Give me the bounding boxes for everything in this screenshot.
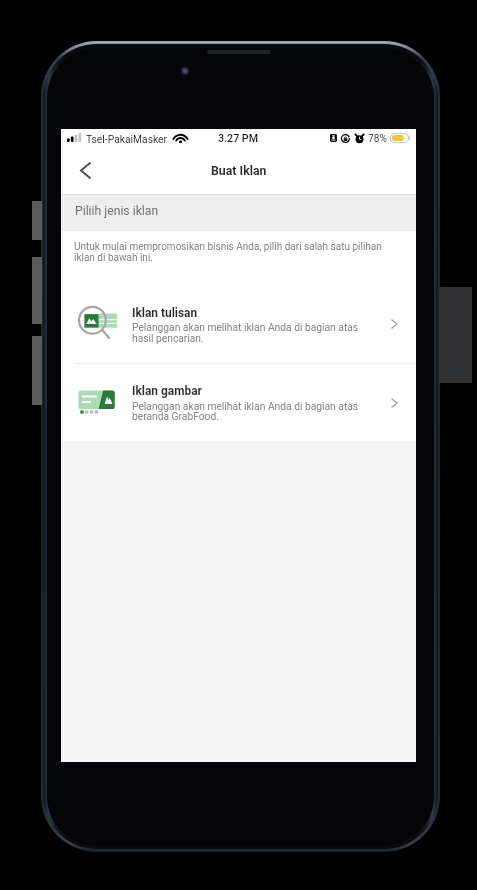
staticText: Iklan gambar xyxy=(132,384,202,398)
button[interactable]: Iklan gambar xyxy=(61,351,416,426)
staticText: 78% xyxy=(368,133,387,145)
staticText: Untuk mulai mempromosikan bisnis Anda, p… xyxy=(74,241,382,253)
staticText: Pelanggan akan melihat iklan Anda di bag… xyxy=(132,400,359,412)
staticText: hasil pencarian. xyxy=(132,332,204,344)
button[interactable]: Back xyxy=(65,151,105,189)
staticText: beranda GrabFood. xyxy=(132,410,219,422)
staticText: iklan di bawah ini. xyxy=(74,252,153,264)
staticText: Pelanggan akan melihat iklan Anda di bag… xyxy=(132,321,359,333)
button[interactable]: Iklan tulisan xyxy=(61,276,416,351)
staticText: Buat Iklan xyxy=(211,164,267,178)
staticText: Piliih jenis iklan xyxy=(75,204,159,218)
staticText: Tsel-PakaiMasker xyxy=(86,133,168,145)
staticText: 3.27 PM xyxy=(218,132,259,145)
staticText: Iklan tulisan xyxy=(132,306,198,320)
